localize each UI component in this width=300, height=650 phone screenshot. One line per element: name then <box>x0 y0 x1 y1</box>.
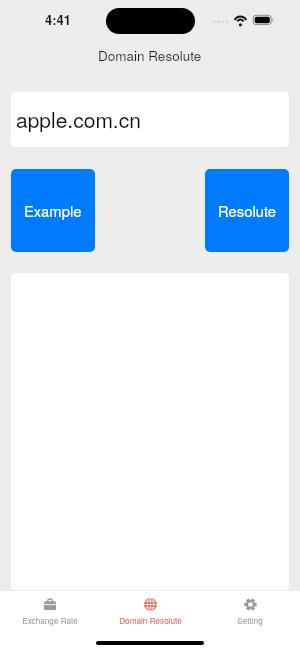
button[interactable]: Exchange Rate <box>0 591 100 631</box>
button[interactable]: Resolute <box>205 169 289 252</box>
other: Domain Resolute <box>144 598 157 611</box>
staticText: Exchange Rate <box>22 615 78 627</box>
staticText: Domain Resolute <box>98 46 202 65</box>
other: Exchange Rate <box>44 599 56 610</box>
button[interactable]: Setting <box>200 591 300 631</box>
staticText: 4:41 <box>45 10 72 29</box>
other: Setting <box>244 598 257 611</box>
staticText: apple.com.cn <box>16 104 141 134</box>
staticText: Resolute <box>218 200 277 221</box>
staticText: Example <box>24 200 82 221</box>
staticText: Domain Resolute <box>119 615 182 627</box>
button[interactable]: apple.com.cn <box>11 92 289 147</box>
button[interactable]: Example <box>11 169 95 252</box>
button[interactable]: Domain Resolute <box>100 591 200 631</box>
staticText: Setting <box>237 615 263 627</box>
